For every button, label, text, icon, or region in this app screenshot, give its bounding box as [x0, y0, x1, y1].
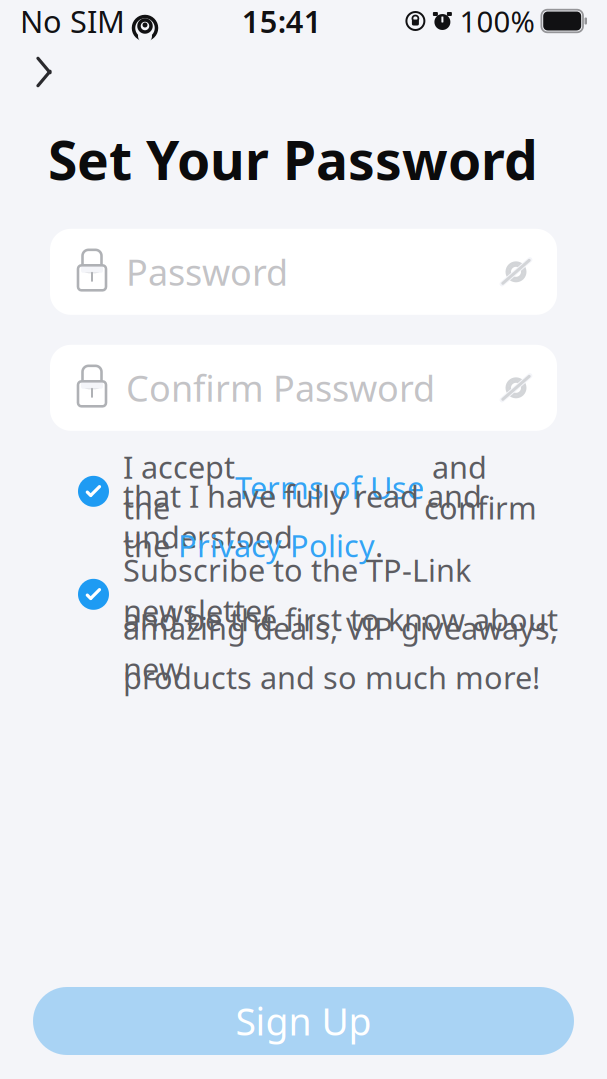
staticText: Set Your Password [48, 124, 538, 195]
staticText: 15:41 [242, 1, 322, 41]
staticText: 100% [459, 1, 534, 40]
staticText: I accept the [123, 447, 235, 528]
button[interactable]: Show Confirm Password [485, 357, 547, 419]
staticText: . [375, 525, 383, 566]
button[interactable]: Sign Up [33, 987, 574, 1055]
staticText: the [123, 525, 178, 566]
staticText: that I have fully read and understood [123, 476, 482, 557]
staticText: Password [126, 248, 288, 296]
staticText: Terms of Use [235, 467, 424, 508]
button[interactable]: I accept the [78, 473, 567, 560]
staticText: products and so much more! [123, 657, 540, 698]
staticText: Privacy Policy [178, 525, 375, 566]
button[interactable]: Back [16, 46, 72, 98]
button[interactable]: Subscribe to the TP-Link newsletter [78, 576, 567, 692]
staticText: and be the first to know about [123, 599, 558, 640]
staticText: Subscribe to the TP-Link newsletter [123, 550, 471, 631]
staticText: Confirm Password [126, 364, 435, 412]
staticText: and confirm [424, 447, 537, 528]
staticText: Sign Up [235, 996, 371, 1046]
staticText: amazing deals, VIP giveaways, new [123, 608, 558, 689]
staticText: No SIM [20, 1, 125, 41]
button[interactable]: Show Password [485, 241, 547, 303]
